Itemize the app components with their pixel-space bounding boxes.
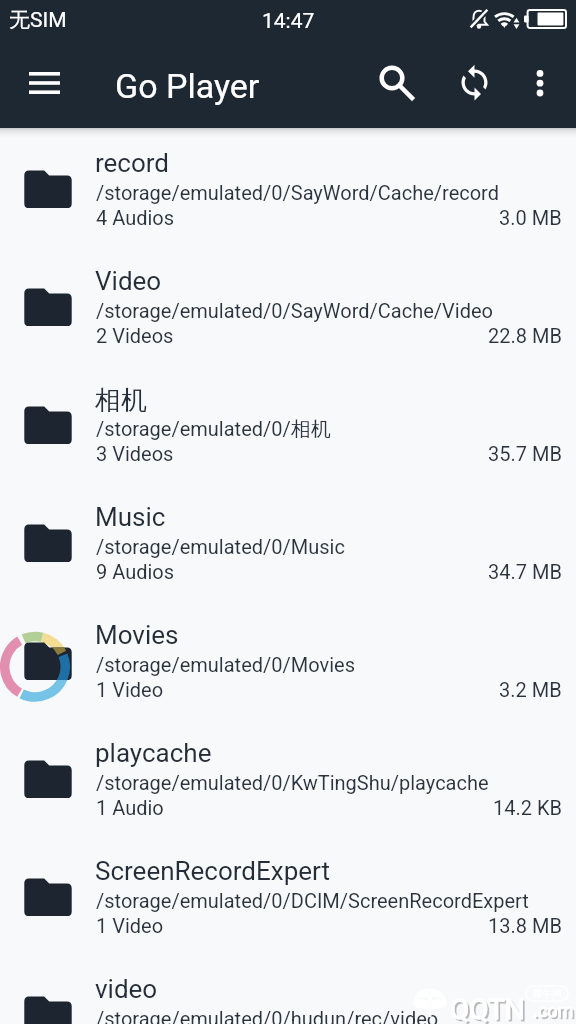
staticText: 3.2 MB [499,678,562,701]
staticText: 1 Audio [96,796,164,819]
staticText: QQTN [450,993,525,1024]
staticText: QQTN [452,995,527,1024]
staticText: record [95,148,170,178]
staticText: 2 Videos [96,324,174,347]
button[interactable]: Video [0,246,576,364]
staticText: playcache [95,738,212,768]
staticText: 13.8 MB [488,914,562,937]
staticText: 无SIM [9,7,67,33]
button[interactable]: Movies [0,600,576,718]
staticText: 34.7 MB [488,560,562,583]
staticText: Music [95,502,166,532]
staticText: /storage/emulated/0/Movies [96,653,355,676]
staticText: /storage/emulated/0/相机 [96,417,331,442]
staticText: 4 Audios [96,206,175,229]
button[interactable]: playcache [0,718,576,836]
staticText: .com [533,1000,574,1021]
button[interactable]: More options [505,48,576,128]
staticText: 9 Audios [96,560,175,583]
button[interactable]: Music [0,482,576,600]
button[interactable]: Search [356,48,428,128]
staticText: 1 Video [96,914,164,937]
staticText: 35.7 MB [488,442,562,465]
staticText: 22.8 MB [488,324,562,347]
staticText: 3.0 MB [499,206,562,229]
staticText: /storage/emulated/0/DCIM/ScreenRecordExp… [96,889,529,912]
staticText: 14.2 KB [493,796,562,819]
staticText: Movies [95,620,179,650]
staticText: /storage/emulated/0/Music [96,535,345,558]
button[interactable]: video [0,954,576,1024]
button[interactable]: 相机 [0,364,576,482]
staticText: 1 Video [96,678,164,701]
staticText: /storage/emulated/0/hudun/rec/video [96,1007,439,1024]
staticText: /storage/emulated/0/KwTingShu/playcache [96,771,489,794]
staticText: video [95,974,158,1004]
staticText: /storage/emulated/0/SayWord/Cache/Video [96,299,493,322]
button[interactable]: ScreenRecordExpert [0,836,576,954]
staticText: ScreenRecordExpert [95,856,331,886]
staticText: Video [95,266,162,296]
button[interactable]: Open navigation drawer [0,48,78,128]
staticText: 14:47 [262,9,315,34]
staticText: /storage/emulated/0/SayWord/Cache/record [96,181,499,204]
staticText: 相机 [95,384,147,417]
staticText: Go Player [115,66,260,106]
button[interactable]: record [0,128,576,246]
button[interactable]: Refresh [438,48,510,128]
staticText: 3 Videos [96,442,174,465]
staticText: .com [535,1002,576,1023]
